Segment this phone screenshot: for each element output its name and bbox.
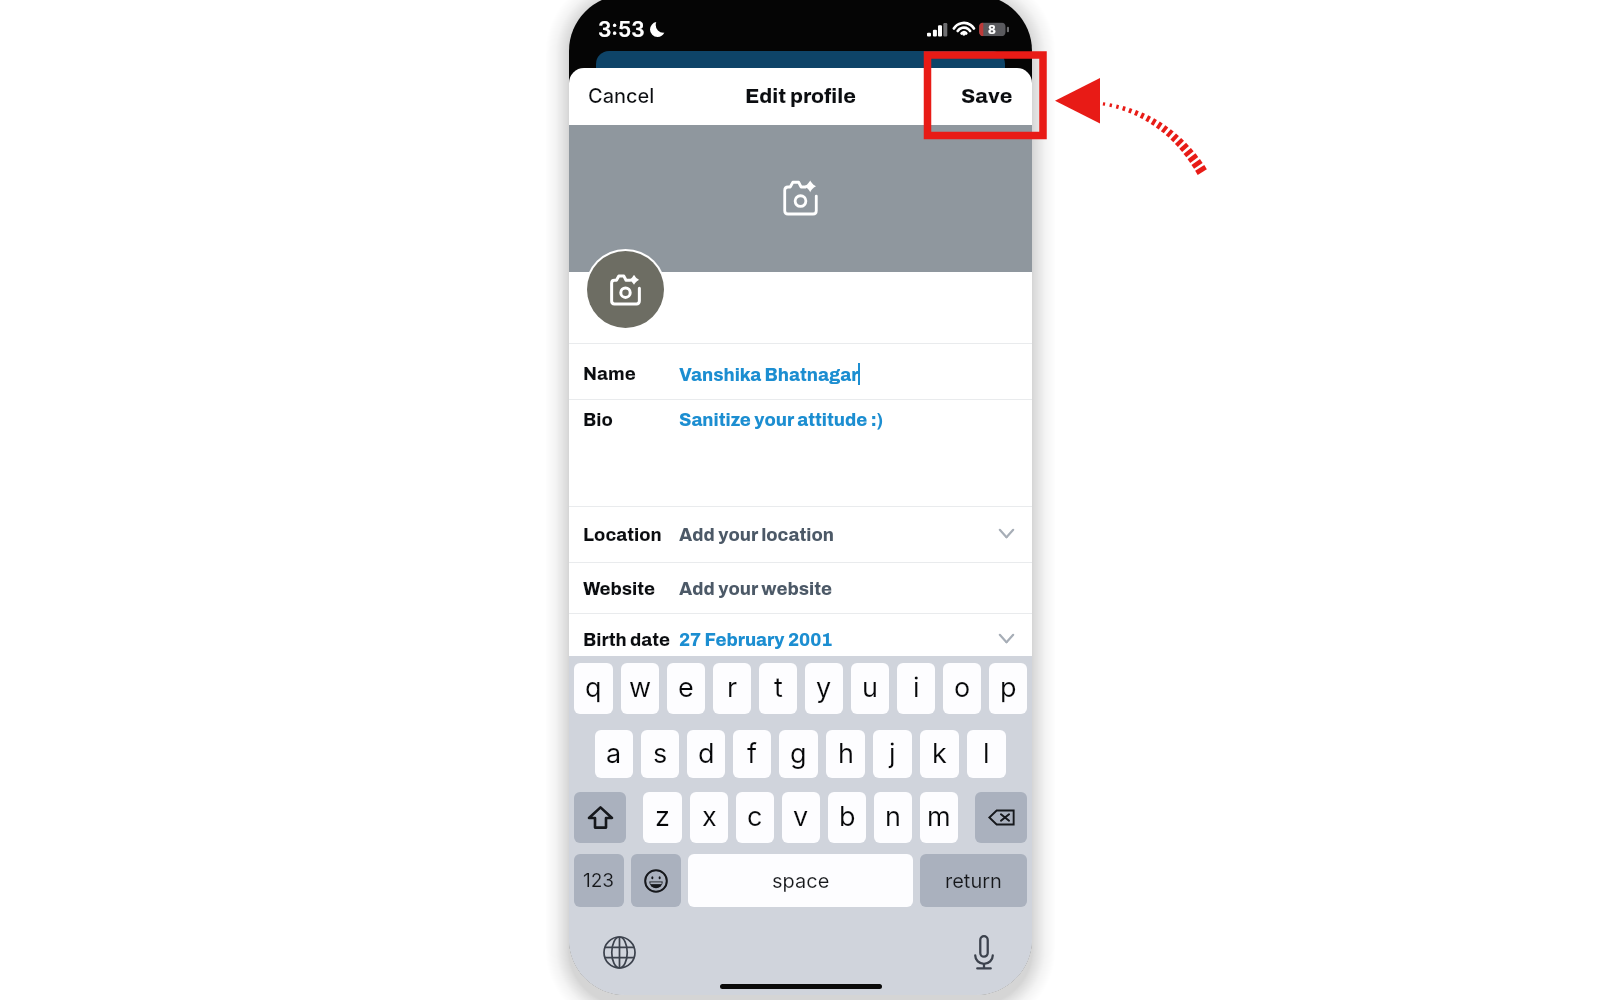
staticText: i — [913, 671, 920, 704]
button[interactable]: v — [782, 792, 820, 843]
staticText: Website — [583, 579, 656, 598]
staticText: 8 — [988, 22, 996, 37]
button[interactable]: Dictate — [965, 933, 1003, 971]
staticText: Name — [583, 364, 636, 383]
staticText: l — [983, 737, 990, 770]
button[interactable]: f — [733, 730, 771, 778]
staticText: e — [678, 671, 694, 704]
staticText: m — [927, 800, 951, 833]
button[interactable]: Shift — [574, 792, 626, 843]
button[interactable]: l — [967, 730, 1006, 778]
button[interactable]: s — [641, 730, 679, 778]
staticText: j — [889, 737, 896, 770]
button[interactable]: Location — [569, 507, 1032, 562]
button[interactable]: 123 — [574, 854, 624, 907]
button[interactable]: Change header photo — [569, 125, 1032, 272]
button[interactable]: a — [595, 730, 633, 778]
staticText: w — [629, 671, 652, 704]
button[interactable]: t — [759, 663, 797, 714]
staticText: s — [653, 737, 668, 770]
staticText: f — [747, 737, 757, 770]
staticText: n — [885, 800, 901, 833]
staticText: y — [816, 671, 832, 704]
button[interactable]: r — [713, 663, 751, 714]
staticText: a — [606, 737, 622, 770]
button[interactable]: Save — [946, 68, 1028, 126]
staticText: c — [747, 800, 763, 833]
staticText: Location — [583, 525, 662, 544]
button[interactable]: i — [897, 663, 935, 714]
button[interactable]: c — [736, 792, 774, 843]
staticText: t — [774, 671, 783, 704]
button[interactable]: w — [621, 663, 659, 714]
button[interactable]: Backspace — [975, 792, 1027, 843]
staticText: r — [727, 671, 738, 704]
button[interactable]: space — [688, 854, 913, 907]
staticText: u — [862, 671, 878, 704]
button[interactable]: h — [826, 730, 865, 778]
staticText: space — [772, 869, 830, 893]
button[interactable]: u — [851, 663, 889, 714]
staticText: o — [954, 671, 971, 704]
button[interactable]: e — [667, 663, 705, 714]
staticText: Birth date — [583, 630, 671, 649]
staticText: v — [793, 800, 809, 833]
button[interactable]: Change profile photo — [587, 251, 664, 328]
staticText: Cancel — [588, 84, 655, 108]
button[interactable]: p — [989, 663, 1027, 714]
button[interactable]: m — [920, 792, 958, 843]
staticText: return — [945, 869, 1002, 893]
button[interactable]: z — [643, 792, 682, 843]
staticText: Save — [961, 85, 1013, 107]
staticText: p — [1000, 671, 1017, 704]
button[interactable]: o — [943, 663, 981, 714]
button[interactable]: q — [574, 663, 613, 714]
staticText: 27 February 2001 — [679, 630, 833, 649]
button[interactable]: Switch keyboard — [600, 933, 638, 971]
button[interactable]: d — [687, 730, 725, 778]
button[interactable]: return — [920, 854, 1027, 907]
staticText: Edit profile — [745, 85, 856, 107]
button[interactable]: Birth date — [569, 614, 1032, 658]
staticText: q — [585, 671, 602, 704]
staticText: b — [839, 800, 856, 833]
button[interactable]: j — [873, 730, 912, 778]
staticText: k — [932, 737, 947, 770]
button[interactable]: y — [805, 663, 843, 714]
button[interactable]: k — [920, 730, 959, 778]
staticText: d — [698, 737, 715, 770]
staticText: 3:53 — [598, 17, 645, 42]
button[interactable]: n — [874, 792, 912, 843]
staticText: Bio — [583, 410, 613, 429]
button[interactable]: Website — [569, 563, 1032, 613]
staticText: z — [655, 800, 670, 833]
staticText: h — [838, 737, 854, 770]
button[interactable]: Emoji — [631, 854, 681, 907]
staticText: Add your location — [679, 525, 834, 544]
staticText: Add your website — [679, 579, 833, 598]
button[interactable]: Cancel — [573, 68, 669, 126]
button[interactable]: Bio — [569, 400, 1032, 506]
staticText: x — [702, 800, 717, 833]
button[interactable]: Name — [569, 344, 1032, 399]
button[interactable]: g — [779, 730, 818, 778]
staticText: Vanshika Bhatnagar — [679, 365, 859, 384]
button[interactable]: b — [828, 792, 866, 843]
staticText: g — [790, 737, 807, 770]
staticText: Sanitize your attitude :) — [679, 410, 884, 429]
button[interactable]: x — [690, 792, 728, 843]
staticText: 123 — [583, 869, 615, 892]
